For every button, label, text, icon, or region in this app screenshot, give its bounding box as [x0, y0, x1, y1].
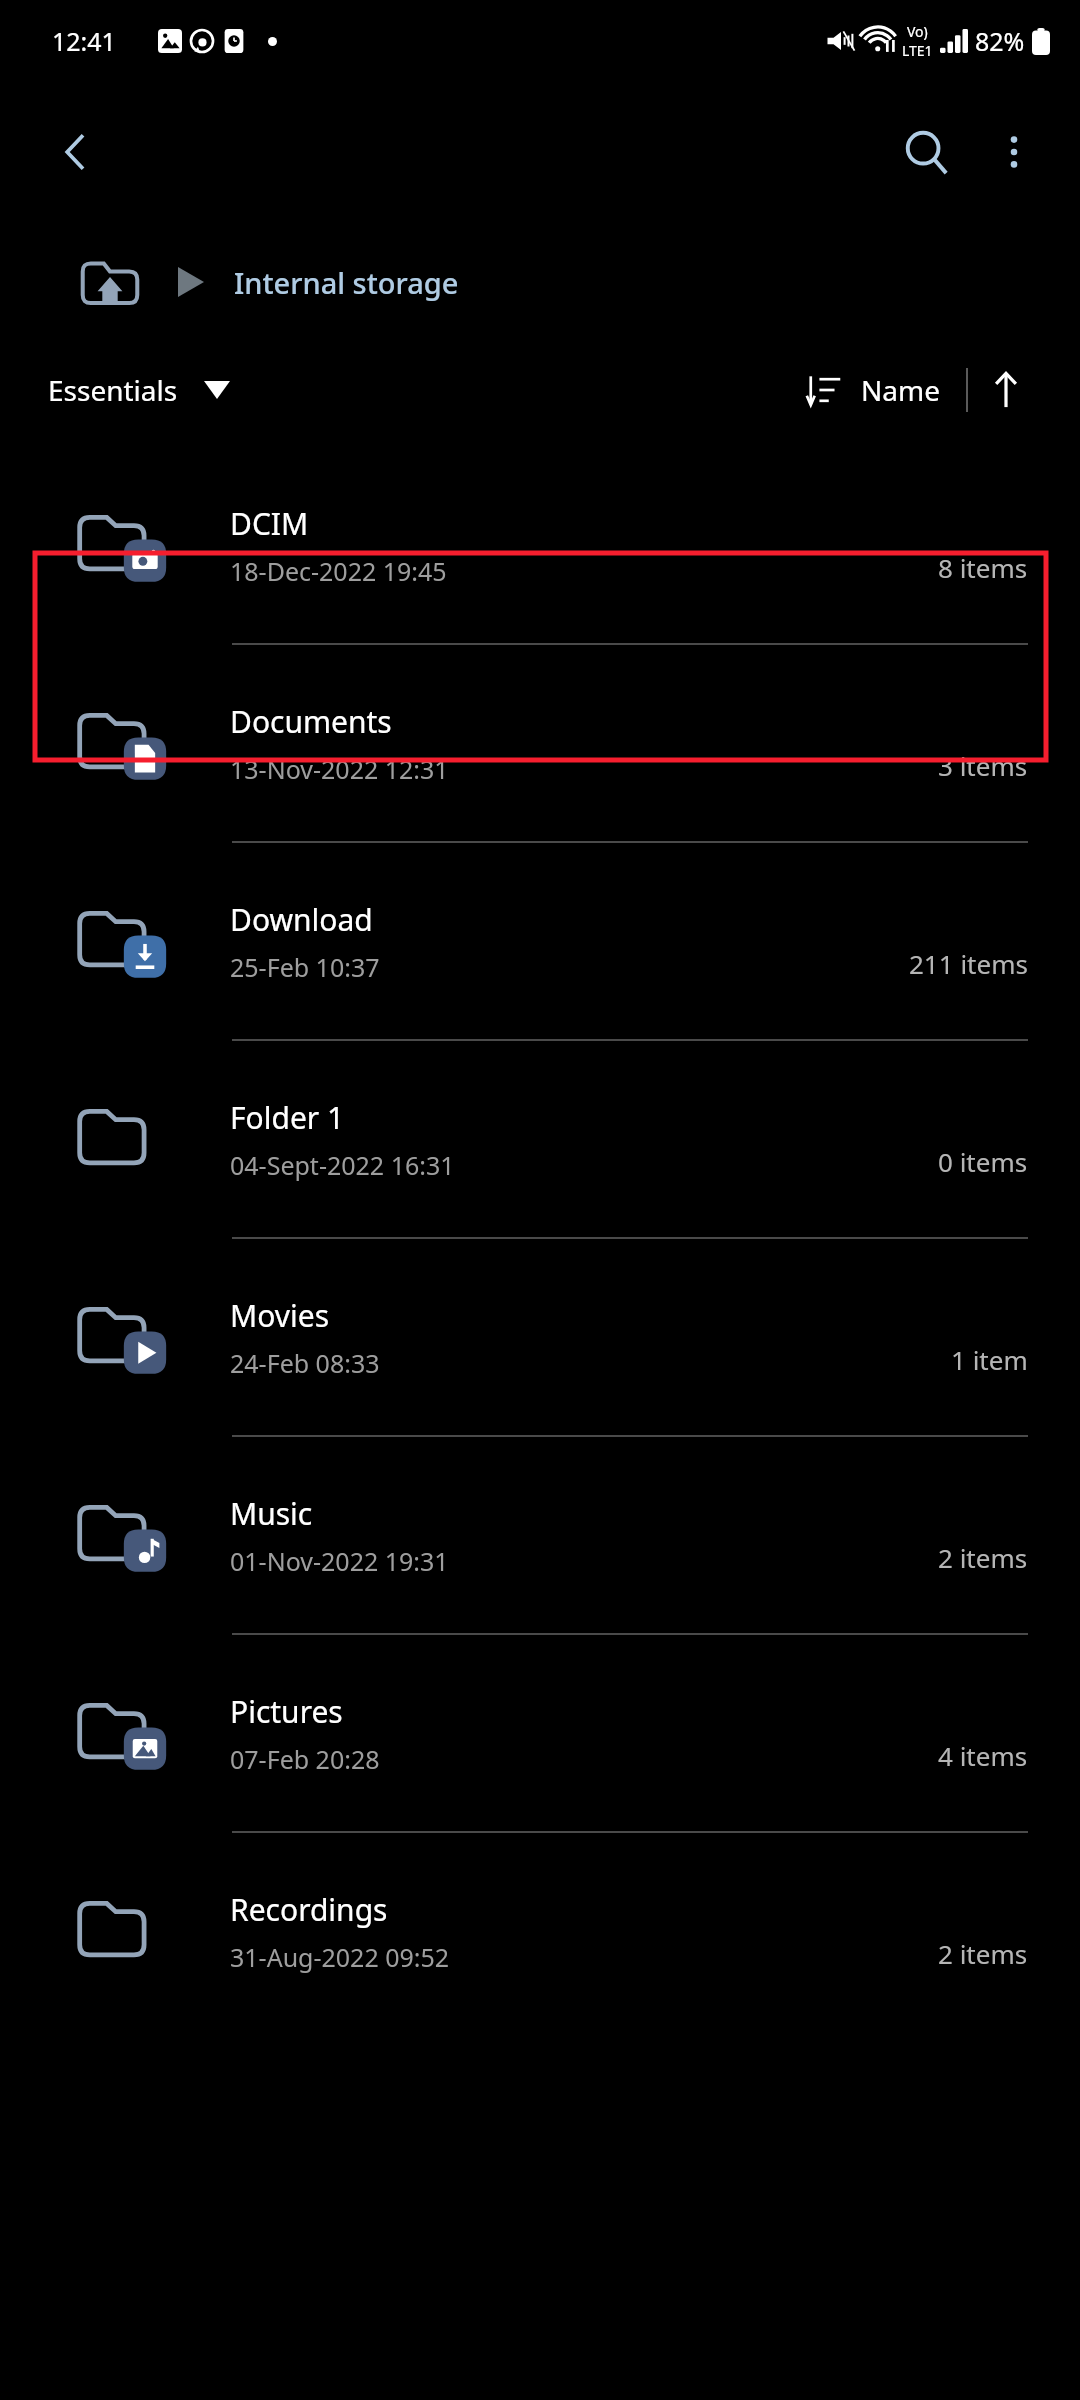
staticText: 3 items — [938, 748, 1028, 783]
staticText: LTE1 — [902, 41, 933, 60]
button[interactable]: Internal storage — [234, 263, 459, 302]
staticText: Documents — [230, 701, 392, 742]
button[interactable]: Download — [0, 843, 1080, 1041]
staticText: 04-Sept-2022 16:31 — [230, 1148, 455, 1182]
button[interactable]: Recordings — [0, 1833, 1080, 2029]
staticText: 4 items — [938, 1738, 1028, 1773]
button[interactable]: Home — [74, 246, 146, 318]
button[interactable]: More options — [972, 110, 1056, 194]
staticText: 31-Aug-2022 09:52 — [230, 1940, 450, 1974]
button[interactable]: Sort ascending — [968, 352, 1044, 428]
staticText: 2 items — [938, 1540, 1028, 1575]
staticText: Name — [861, 371, 940, 409]
button[interactable]: DCIM — [0, 447, 1080, 645]
staticText: 2 items — [938, 1936, 1028, 1971]
button[interactable]: Name — [805, 371, 940, 409]
staticText: 211 items — [909, 946, 1028, 981]
staticText: Vo) — [907, 22, 928, 41]
button[interactable]: Folder 1 — [0, 1041, 1080, 1239]
staticText: Folder 1 — [230, 1097, 345, 1138]
staticText: 0 items — [938, 1144, 1028, 1179]
button[interactable]: Search — [880, 106, 972, 198]
staticText: 25-Feb 10:37 — [230, 950, 380, 984]
button[interactable]: Essentials — [48, 371, 240, 409]
staticText: Download — [230, 899, 373, 940]
button[interactable]: Music — [0, 1437, 1080, 1635]
button[interactable]: Back — [34, 110, 118, 194]
staticText: Music — [230, 1493, 313, 1534]
staticText: 18-Dec-2022 19:45 — [230, 554, 447, 588]
staticText: 13-Nov-2022 12:31 — [230, 752, 449, 786]
staticText: DCIM — [230, 503, 309, 544]
staticText: Essentials — [48, 371, 178, 409]
staticText: 82% — [975, 24, 1025, 58]
staticText: 12:41 — [52, 24, 116, 58]
staticText: 24-Feb 08:33 — [230, 1346, 380, 1380]
staticText: 07-Feb 20:28 — [230, 1742, 380, 1776]
staticText: Recordings — [230, 1889, 388, 1930]
staticText: Pictures — [230, 1691, 343, 1732]
staticText: 1 item — [951, 1342, 1028, 1377]
button[interactable]: Movies — [0, 1239, 1080, 1437]
button[interactable]: Documents — [0, 645, 1080, 843]
staticText: Internal storage — [234, 263, 459, 302]
staticText: Movies — [230, 1295, 330, 1336]
staticText: 8 items — [938, 550, 1028, 585]
staticText: 01-Nov-2022 19:31 — [230, 1544, 449, 1578]
button[interactable]: Pictures — [0, 1635, 1080, 1833]
